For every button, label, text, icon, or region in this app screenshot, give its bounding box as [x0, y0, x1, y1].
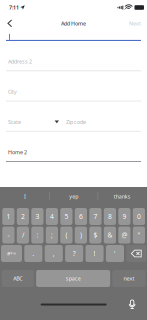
- button[interactable]: ?: [65, 245, 83, 262]
- staticText: ;: [51, 231, 53, 239]
- button[interactable]: Next: [123, 15, 147, 32]
- button[interactable]: Zip code: [62, 101, 147, 131]
- staticText: 0: [137, 212, 141, 221]
- staticText: ': [114, 249, 116, 258]
- staticText: 6: [79, 212, 83, 221]
- button[interactable]: ): [75, 226, 87, 243]
- staticText: 7:11: [9, 4, 19, 11]
- button[interactable]: yep: [50, 188, 98, 204]
- staticText: space: [66, 275, 81, 282]
- staticText: -: [7, 231, 9, 239]
- button[interactable]: space: [36, 270, 110, 287]
- staticText: &: [107, 231, 112, 239]
- staticText: 1: [6, 212, 10, 221]
- staticText: next: [123, 275, 134, 282]
- staticText: Next: [129, 20, 141, 27]
- button[interactable]: next: [112, 270, 145, 287]
- button[interactable]: #+=: [1, 245, 22, 262]
- staticText: $: [93, 231, 97, 239]
- staticText: thanks: [114, 193, 131, 200]
- button[interactable]: Home 2: [0, 132, 147, 161]
- button[interactable]: Address 2: [0, 41, 147, 70]
- staticText: .: [32, 249, 34, 258]
- staticText: 2: [21, 212, 25, 221]
- staticText: 7: [93, 212, 97, 221]
- button[interactable]: 4: [46, 208, 58, 225]
- button[interactable]: ': [106, 245, 124, 262]
- staticText: ,: [53, 249, 55, 258]
- staticText: ?: [73, 249, 76, 258]
- staticText: Zip code: [66, 118, 86, 125]
- staticText: 8: [108, 212, 112, 221]
- button[interactable]: 0: [133, 208, 145, 225]
- staticText: /: [22, 231, 24, 239]
- button[interactable]: City: [0, 71, 147, 101]
- staticText: City: [8, 88, 17, 95]
- button[interactable]: &: [104, 226, 116, 243]
- button[interactable]: /: [17, 226, 29, 243]
- button[interactable]: I: [1, 188, 49, 204]
- button[interactable]: 1: [2, 208, 14, 225]
- button[interactable]: ": [133, 226, 145, 243]
- button[interactable]: 2: [17, 208, 29, 225]
- staticText: 4: [50, 212, 54, 221]
- button[interactable]: 6: [75, 208, 87, 225]
- staticText: Address 2: [8, 58, 32, 65]
- button[interactable]: Back: [0, 15, 20, 32]
- staticText: 9: [122, 212, 126, 221]
- button[interactable]: $: [89, 226, 101, 243]
- button[interactable]: ;: [46, 226, 58, 243]
- button[interactable]: !: [85, 245, 104, 262]
- staticText: ABC: [13, 275, 22, 282]
- button[interactable]: -: [2, 226, 14, 243]
- staticText: (: [65, 231, 67, 239]
- staticText: 5: [64, 212, 68, 221]
- staticText: State: [8, 118, 21, 125]
- staticText: ): [80, 231, 82, 239]
- button[interactable]: .: [24, 245, 42, 262]
- staticText: #+=: [7, 250, 16, 257]
- staticText: Add Home: [61, 20, 86, 27]
- button[interactable]: (: [60, 226, 72, 243]
- button[interactable]: Delete: [126, 245, 146, 262]
- button[interactable]: :: [31, 226, 43, 243]
- staticText: !: [94, 249, 96, 258]
- button[interactable]: State: [0, 101, 62, 131]
- staticText: Home 2: [8, 148, 27, 156]
- button[interactable]: 3: [31, 208, 43, 225]
- button[interactable]: @: [118, 226, 130, 243]
- staticText: @: [121, 231, 127, 239]
- staticText: I: [24, 193, 26, 200]
- staticText: :: [36, 231, 38, 239]
- staticText: yep: [69, 193, 78, 200]
- button[interactable]: 9: [118, 208, 130, 225]
- button[interactable]: 7: [89, 208, 101, 225]
- button[interactable]: Dictate: [128, 300, 136, 309]
- staticText: ": [137, 231, 140, 239]
- button[interactable]: thanks: [98, 188, 146, 204]
- button[interactable]: 5: [60, 208, 72, 225]
- button[interactable]: ,: [45, 245, 63, 262]
- button[interactable]: 8: [104, 208, 116, 225]
- staticText: 3: [35, 212, 39, 221]
- button[interactable]: ABC: [2, 270, 34, 287]
